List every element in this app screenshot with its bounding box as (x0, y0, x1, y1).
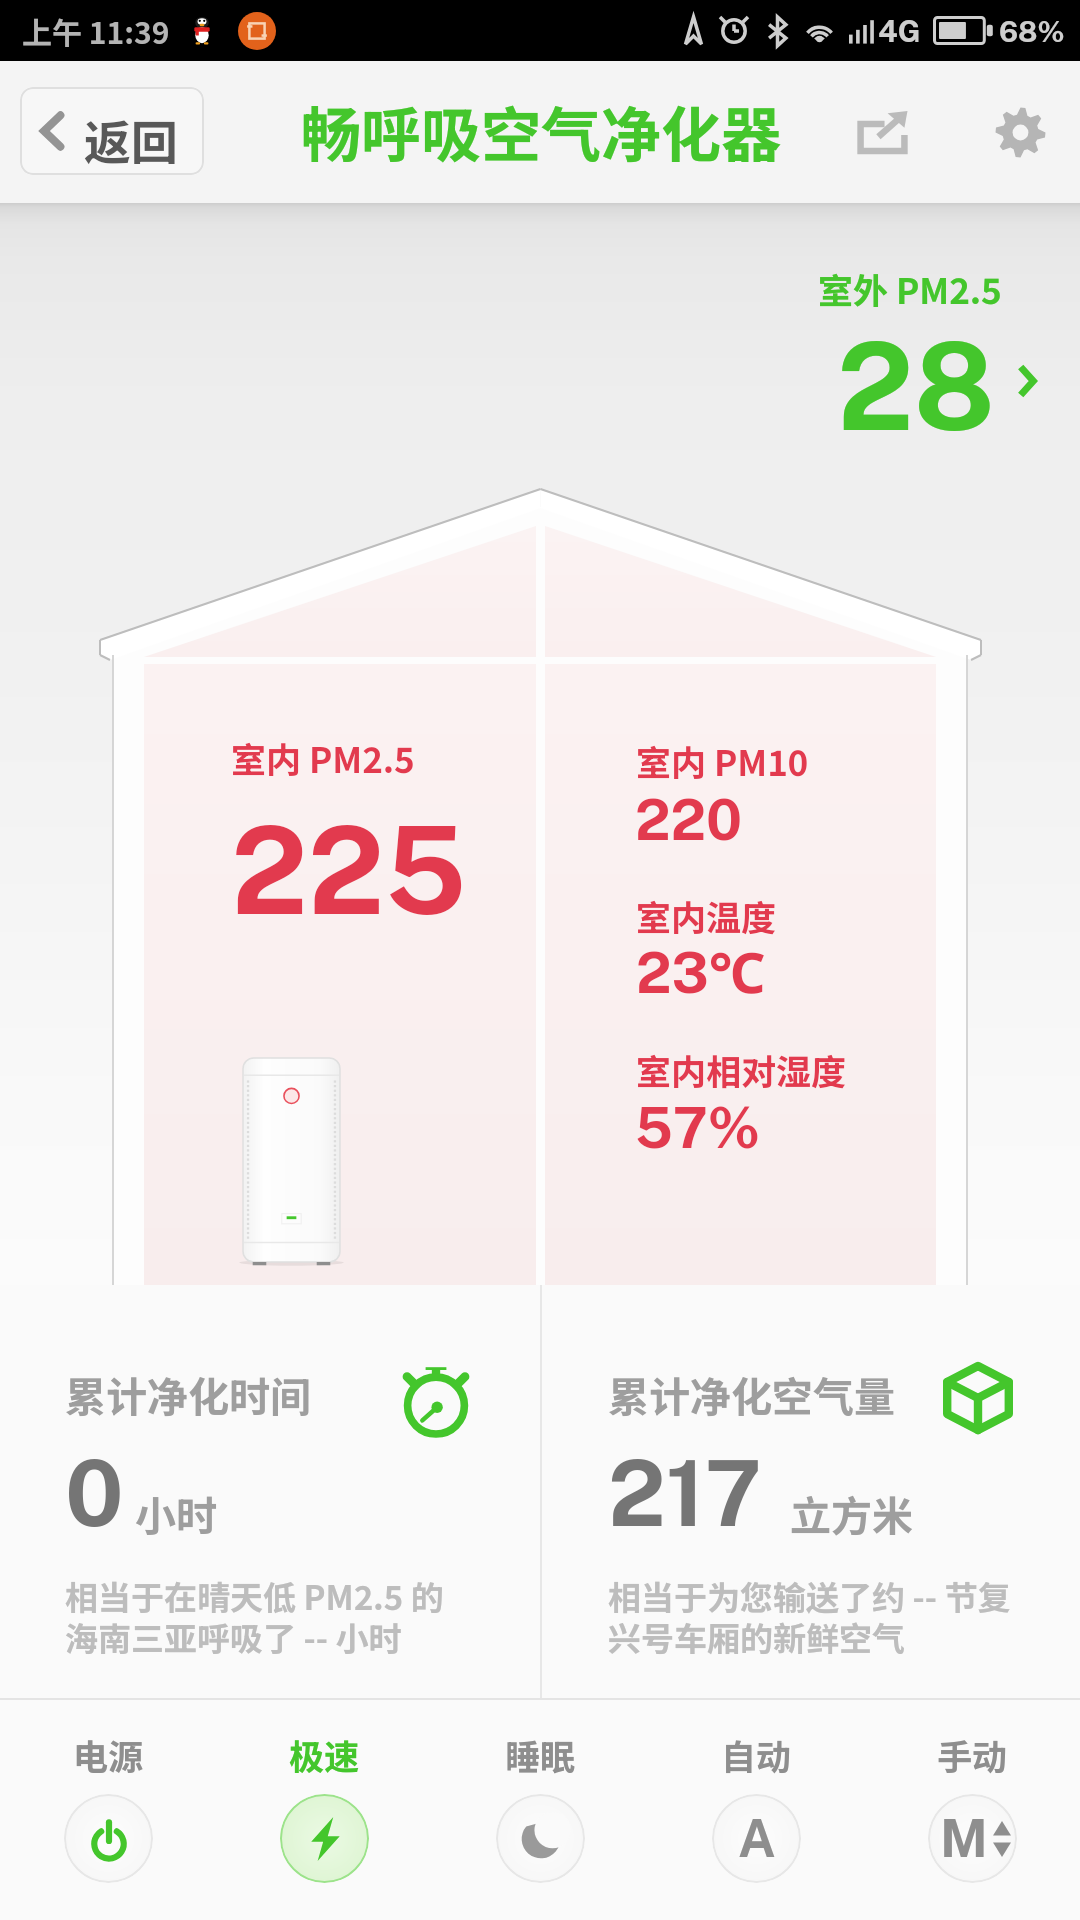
staticText: 室内相对湿度 (636, 1044, 847, 1095)
staticText: 4G (878, 13, 921, 48)
button[interactable]: Share (827, 77, 937, 187)
staticText: A (738, 1808, 776, 1869)
staticText: 累计净化空气量 (608, 1364, 895, 1423)
staticText: 畅呼吸空气净化器 (301, 87, 781, 174)
staticText: 海南三亚呼吸了 -- 小时 (65, 1613, 402, 1661)
staticText: 室外 PM2.5 (818, 263, 1002, 314)
button[interactable]: 手动 (892, 1729, 1052, 1883)
staticText: 室内 PM2.5 (231, 732, 415, 783)
staticText: 手动 (937, 1729, 1008, 1780)
staticText: 返回 (84, 105, 178, 173)
staticText: 28 (837, 315, 996, 457)
staticText: 相当于为您输送了约 -- 节复 (608, 1572, 1011, 1620)
staticText: 累计净化时间 (65, 1364, 311, 1423)
staticText: 小时 (135, 1483, 217, 1542)
staticText: 23℃ (636, 933, 766, 1009)
staticText: 兴号车厢的新鲜空气 (608, 1613, 905, 1661)
staticText: M (940, 1808, 988, 1869)
staticText: 室内 PM10 (636, 735, 809, 786)
button[interactable]: 自动 (676, 1729, 836, 1883)
button[interactable]: 室外 PM2.5 (790, 253, 1060, 493)
staticText: 极速 (289, 1729, 360, 1780)
button[interactable]: 电源 (28, 1729, 188, 1883)
button[interactable]: 返回 (20, 87, 204, 175)
staticText: 相当于在晴天低 PM2.5 的 (65, 1572, 444, 1620)
staticText: 自动 (721, 1729, 792, 1780)
staticText: 室内温度 (636, 890, 777, 941)
button[interactable]: 睡眠 (460, 1729, 620, 1883)
staticText: 225 (231, 799, 467, 941)
staticText: 0 (65, 1440, 124, 1547)
staticText: 上午 11:39 (22, 9, 170, 52)
staticText: 睡眠 (505, 1729, 576, 1780)
staticText: 220 (635, 787, 743, 853)
staticText: 68% (999, 14, 1065, 48)
staticText: 电源 (73, 1729, 144, 1780)
button[interactable]: 极速 (244, 1729, 404, 1883)
button[interactable] (540, 1285, 1080, 1698)
button[interactable]: Settings (965, 77, 1075, 187)
staticText: 57% (635, 1095, 761, 1161)
staticText: 217 (608, 1440, 762, 1547)
staticText: 立方米 (790, 1483, 913, 1542)
button[interactable] (0, 1285, 540, 1698)
